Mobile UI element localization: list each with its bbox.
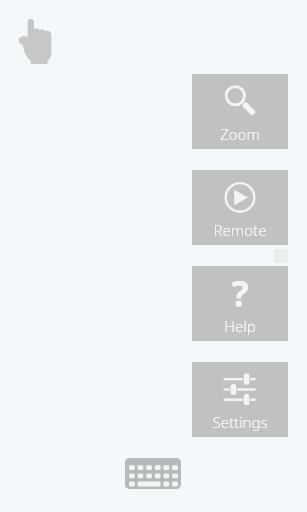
staticText: Help xyxy=(192,316,288,391)
staticText: Remote xyxy=(192,220,288,295)
button[interactable]: Remote xyxy=(192,170,288,245)
button[interactable]: ? xyxy=(192,266,288,341)
staticText: Settings xyxy=(192,412,288,487)
button[interactable]: Settings xyxy=(192,362,288,437)
staticText: ? xyxy=(192,269,288,344)
staticText: Zoom xyxy=(192,124,288,199)
button[interactable]: Keyboard xyxy=(125,458,181,489)
button[interactable]: Zoom xyxy=(192,74,288,149)
